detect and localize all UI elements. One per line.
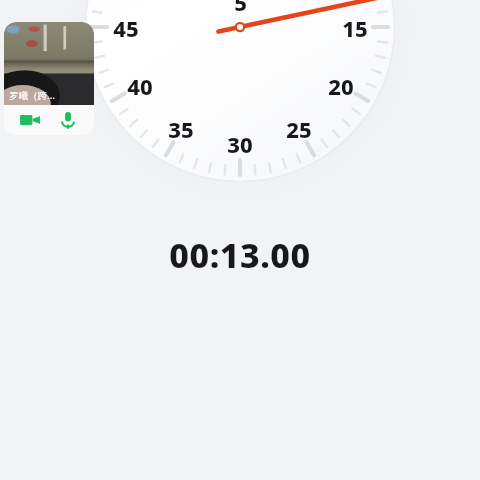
staticText: 45 bbox=[113, 13, 139, 41]
staticText: 30 bbox=[227, 129, 253, 157]
staticText: 5 bbox=[234, 0, 247, 15]
staticText: 35 bbox=[168, 114, 194, 142]
button[interactable]: Toggle camera bbox=[17, 107, 43, 133]
staticText: 40 bbox=[127, 71, 153, 99]
staticText: 00:13.00 bbox=[169, 232, 311, 278]
button[interactable]: Toggle microphone bbox=[55, 107, 81, 133]
staticText: 20 bbox=[328, 71, 354, 99]
staticText: 25 bbox=[286, 114, 312, 142]
staticText: 罗曦（跨… bbox=[9, 89, 55, 102]
button[interactable]: Video call picture in picture bbox=[4, 22, 94, 135]
staticText: 15 bbox=[342, 13, 368, 41]
